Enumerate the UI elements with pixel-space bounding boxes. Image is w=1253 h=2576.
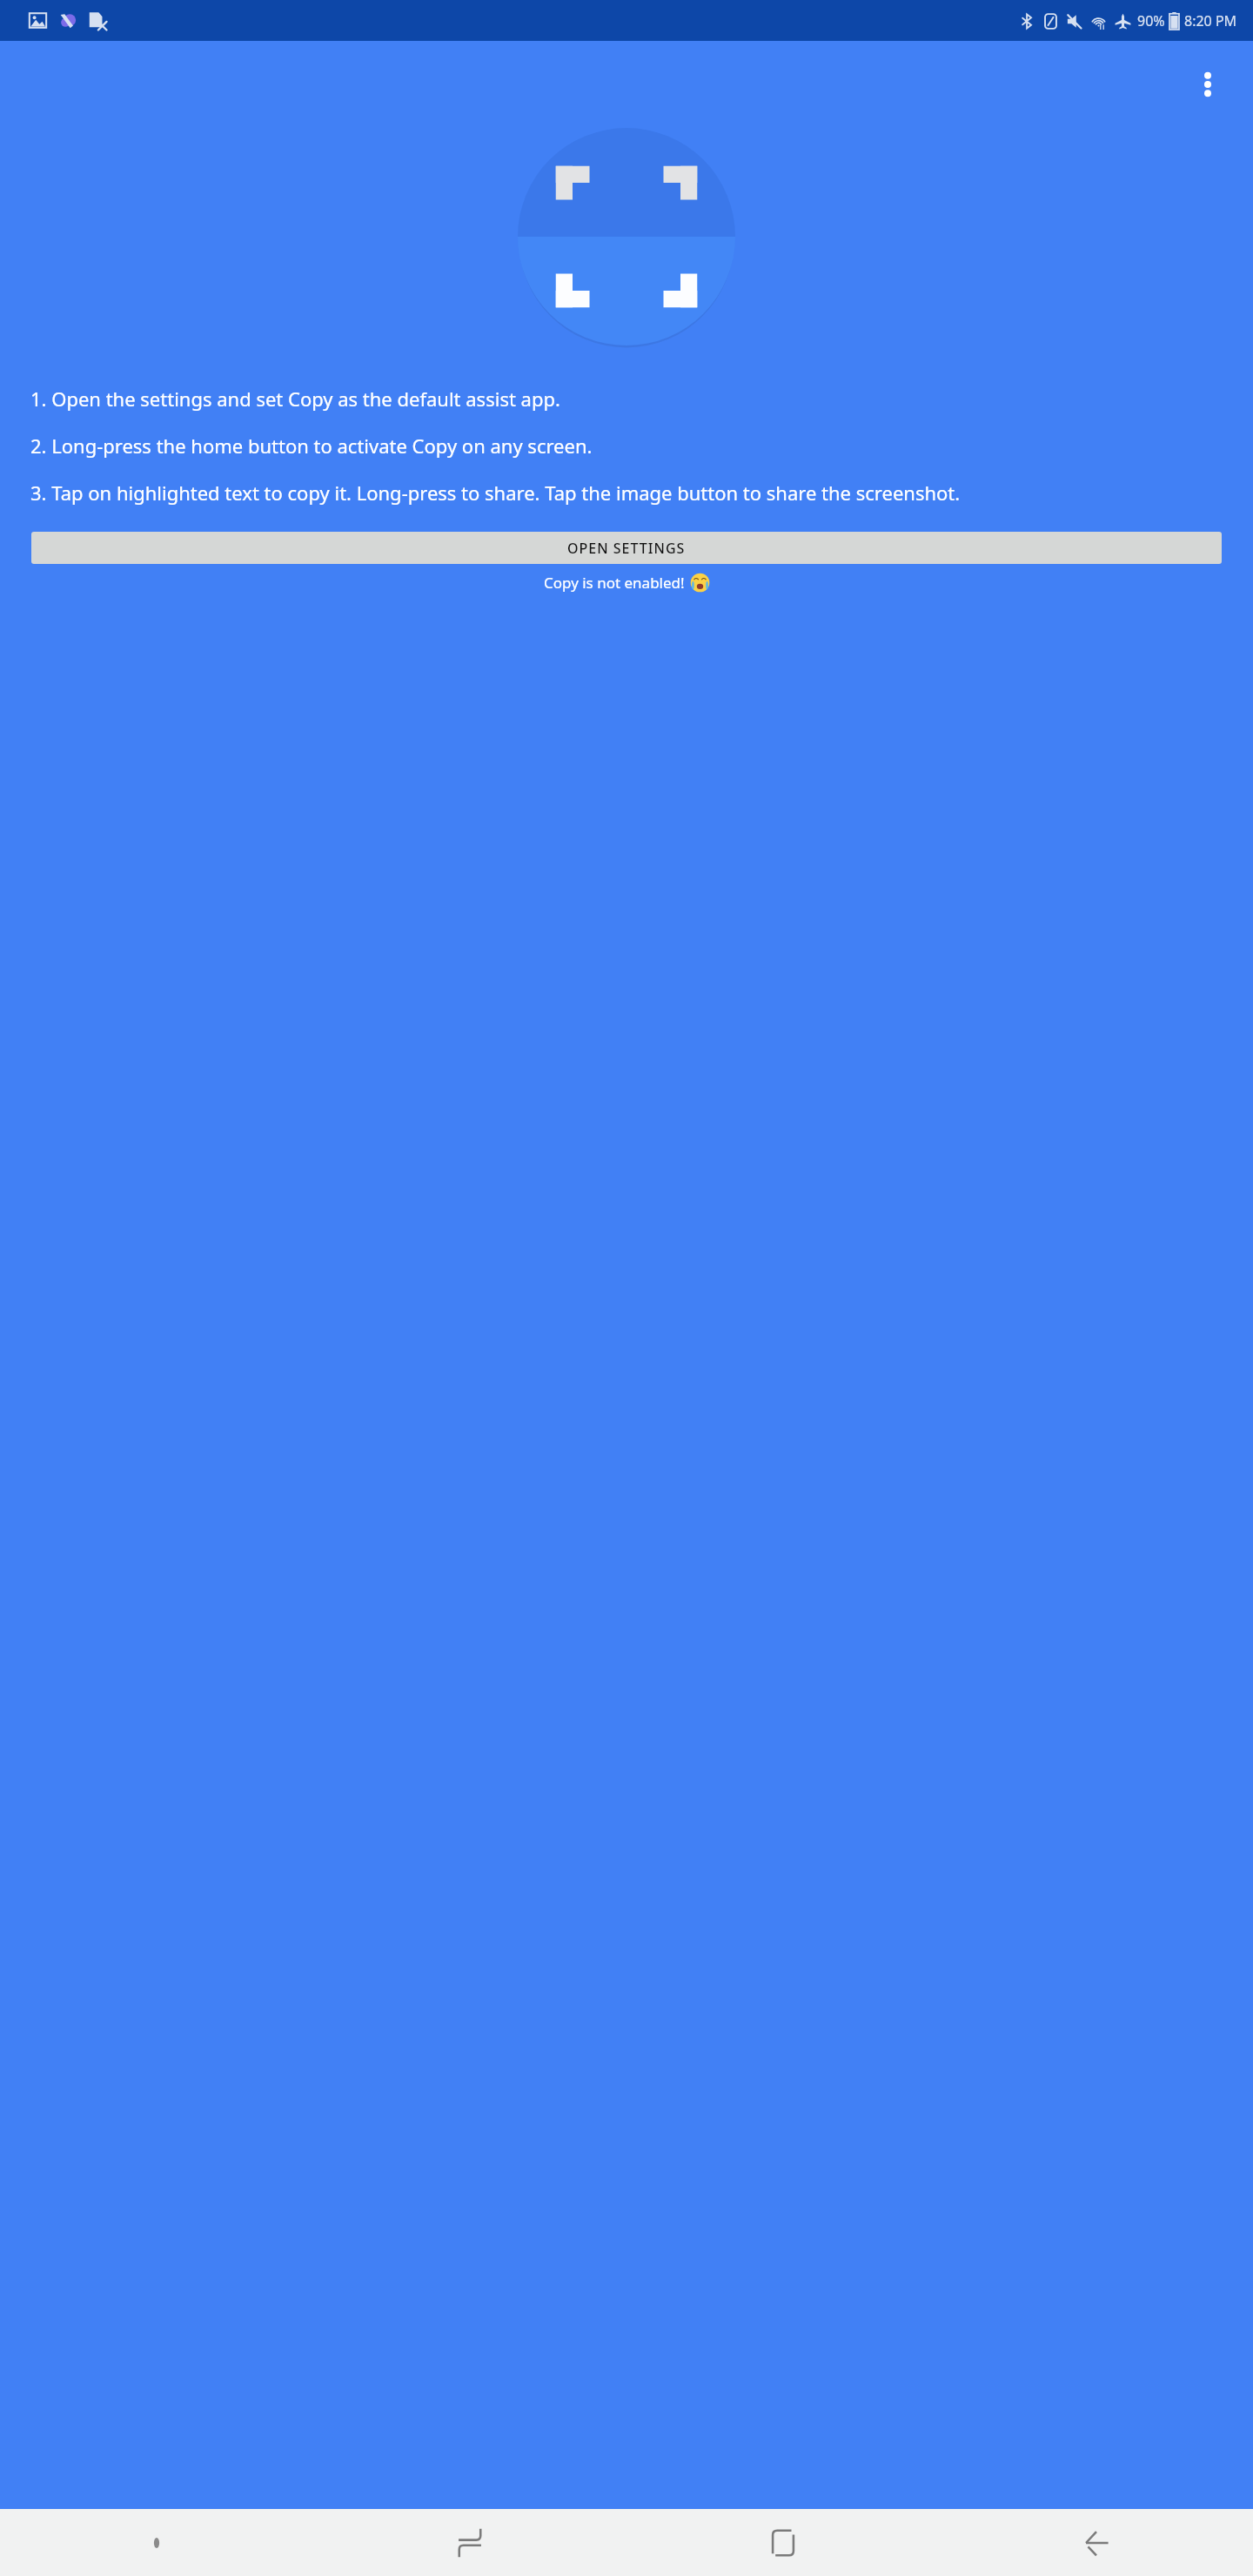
staticText: OPEN SETTINGS: [567, 539, 686, 558]
staticText: 90%: [1137, 11, 1165, 30]
button[interactable]: Recent apps: [313, 2509, 626, 2576]
staticText: 3. Tap on highlighted text to copy it. L…: [30, 480, 1223, 506]
button[interactable]: OPEN SETTINGS: [31, 532, 1222, 564]
button[interactable]: Back: [940, 2509, 1253, 2576]
button[interactable]: Home: [626, 2509, 940, 2576]
staticText: 8:20 PM: [1184, 11, 1237, 30]
staticText: Copy is not enabled!: [544, 573, 685, 593]
staticText: 2. Long-press the home button to activat…: [30, 433, 1223, 459]
staticText: 1. Open the settings and set Copy as the…: [30, 386, 1223, 412]
button[interactable]: More options: [1182, 58, 1234, 111]
button[interactable]: Hide navigation bar: [0, 2509, 313, 2576]
